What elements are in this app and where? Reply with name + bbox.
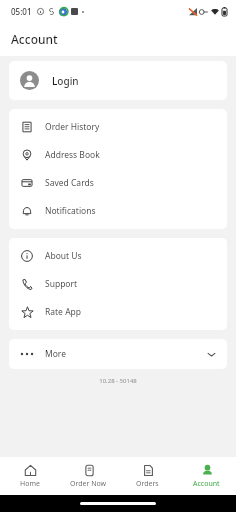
staticText: Login	[52, 74, 79, 88]
staticText: Home	[20, 479, 40, 489]
button[interactable]: Order History	[9, 113, 227, 141]
staticText: Order History	[45, 121, 100, 133]
staticText: Support	[45, 278, 78, 290]
button[interactable]: Home	[0, 457, 59, 495]
staticText: About Us	[45, 250, 82, 262]
button[interactable]: More	[9, 339, 227, 369]
button[interactable]: Notifications	[9, 197, 227, 225]
staticText: Order Now	[70, 479, 107, 489]
button[interactable]: Address Book	[9, 141, 227, 169]
button[interactable]: Support	[9, 270, 227, 298]
staticText: 10.28 - 50148	[0, 377, 236, 385]
staticText: More	[45, 348, 66, 360]
staticText: Account	[193, 479, 220, 489]
button[interactable]: Rate App	[9, 298, 227, 326]
button[interactable]: Login	[9, 61, 227, 100]
staticText: 05:01	[11, 6, 32, 17]
button[interactable]: About Us	[9, 242, 227, 270]
staticText: Rate App	[45, 306, 82, 318]
staticText: Orders	[136, 479, 159, 489]
staticText: Account	[11, 31, 58, 47]
staticText: Saved Cards	[45, 177, 94, 189]
button[interactable]: Saved Cards	[9, 169, 227, 197]
button[interactable]: Orders	[118, 457, 177, 495]
staticText: Address Book	[45, 149, 100, 161]
button[interactable]: Order Now	[59, 457, 118, 495]
button[interactable]: Account	[177, 457, 236, 495]
staticText: Notifications	[45, 205, 96, 217]
